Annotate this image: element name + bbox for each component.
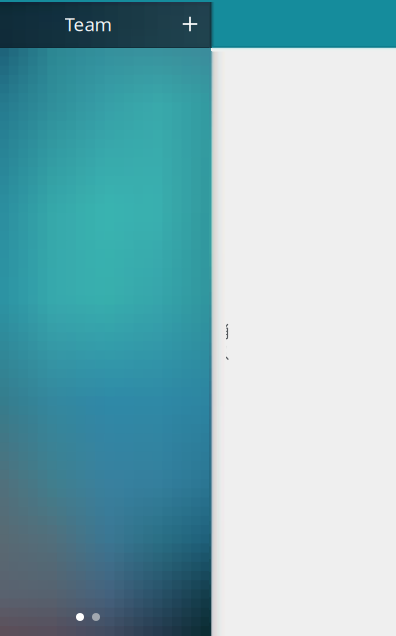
staticText: 消息 [212,321,229,363]
button[interactable]: Add [168,2,212,46]
staticText: Team [64,12,111,36]
button[interactable]: 消息 [212,334,242,350]
